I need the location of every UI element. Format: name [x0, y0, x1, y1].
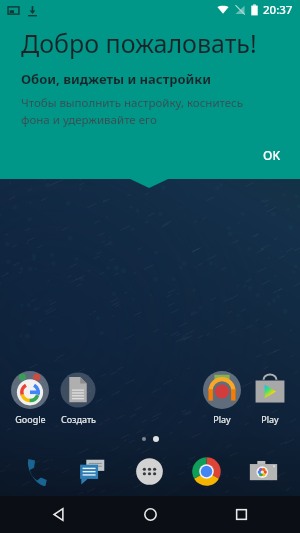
- button[interactable]: Play: [198, 369, 246, 427]
- button[interactable]: Chrome: [178, 453, 235, 490]
- staticText: Создать: [61, 413, 96, 425]
- button[interactable]: Play Маркет: [246, 369, 294, 427]
- button[interactable]: All apps: [121, 453, 178, 490]
- button[interactable]: Создать: [54, 369, 102, 427]
- staticText: Чтобы выполнить настройку, коснитесь фон…: [21, 95, 244, 127]
- staticText: Добро пожаловать!: [21, 26, 257, 60]
- button[interactable]: OK: [243, 141, 300, 169]
- button[interactable]: Home: [118, 496, 182, 533]
- staticText: 20:37: [263, 2, 293, 18]
- button[interactable]: Back: [27, 496, 91, 533]
- staticText: Google: [15, 413, 46, 425]
- staticText: Play: [213, 413, 231, 425]
- button[interactable]: Google: [6, 369, 54, 427]
- staticText: Обои, виджеты и настройки: [21, 70, 212, 88]
- button[interactable]: Messages: [64, 453, 121, 490]
- button[interactable]: Recents: [209, 496, 273, 533]
- button[interactable]: Camera: [235, 453, 292, 490]
- button[interactable]: Phone: [8, 453, 64, 490]
- staticText: OK: [263, 147, 280, 163]
- staticText: Play Маркет: [246, 413, 294, 425]
